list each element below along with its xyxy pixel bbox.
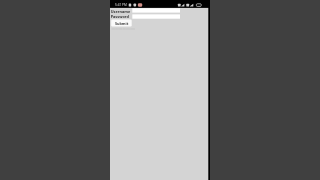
button[interactable]: Submit xyxy=(111,20,132,27)
staticText: Submit xyxy=(115,20,129,25)
button[interactable]: Password input field xyxy=(133,14,180,19)
staticText: 5:41 PM xyxy=(115,3,127,7)
staticText: Password xyxy=(111,14,130,19)
button[interactable]: Username input field xyxy=(133,8,180,13)
staticText: Username xyxy=(111,9,131,14)
